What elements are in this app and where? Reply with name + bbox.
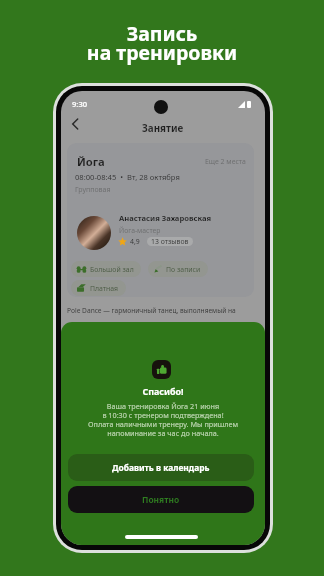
button[interactable]: 13 отзывов	[147, 237, 193, 246]
staticText: Групповая	[75, 185, 111, 195]
staticText: Спасибо!	[61, 385, 265, 397]
staticText: По записи	[166, 265, 201, 274]
button[interactable]: Понятно	[68, 486, 254, 513]
staticText: Йога	[77, 154, 105, 169]
staticText: Запись	[0, 20, 324, 47]
staticText: на тренировки	[0, 39, 324, 66]
staticText: Pole Dance — гармоничный танец, выполняе…	[67, 306, 236, 315]
button[interactable]: Платная	[71, 280, 126, 296]
staticText: Занятие	[142, 122, 184, 135]
staticText: 13 отзывов	[151, 237, 189, 246]
button[interactable]: Добавить в календарь	[68, 454, 254, 481]
staticText: Йога-мастер	[119, 226, 161, 235]
staticText: Анастасия Захаровская	[119, 213, 212, 223]
button[interactable]: Большой зал	[71, 261, 141, 277]
staticText: Большой зал	[90, 265, 134, 274]
staticText: 08:00-08:45 • Вт, 28 октября	[75, 172, 180, 182]
button[interactable]: По записи	[148, 261, 208, 277]
staticText: Платная	[90, 284, 119, 293]
staticText: Добавить в календарь	[112, 462, 210, 473]
button[interactable]: Back	[65, 114, 85, 134]
staticText: Еще 2 места	[205, 157, 246, 166]
staticText: 9:30	[72, 99, 88, 109]
staticText: 4,9	[130, 237, 140, 246]
staticText: Понятно	[142, 494, 180, 505]
staticText: Ваша тренировка Йога 21 июня в 10:30 с т…	[61, 401, 265, 438]
